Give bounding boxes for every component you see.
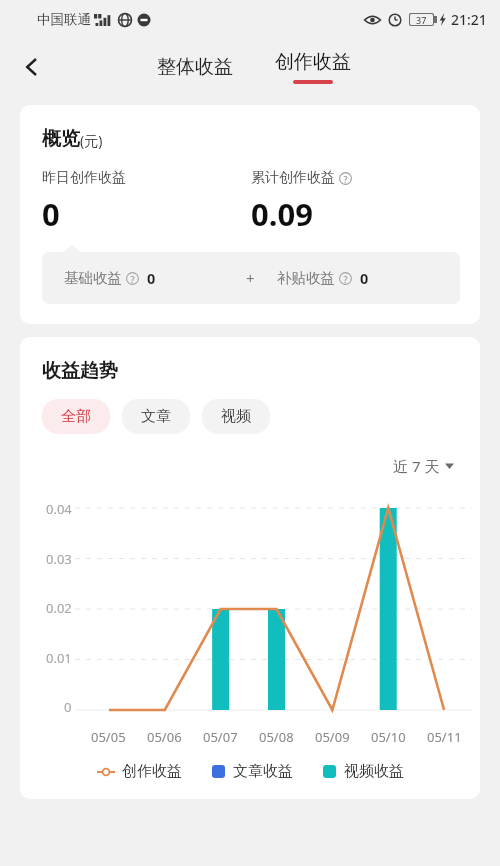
staticText: 创作收益 bbox=[275, 50, 351, 74]
button[interactable]: 近 7 天 bbox=[389, 452, 458, 480]
staticText: 近 7 天 bbox=[393, 456, 440, 476]
staticText: 05/07 bbox=[203, 728, 238, 746]
staticText: 收益趋势 bbox=[42, 359, 118, 383]
staticText: 05/05 bbox=[91, 728, 126, 746]
staticText: 0 bbox=[360, 268, 369, 288]
button[interactable]: 累计创作收益说明 bbox=[339, 172, 352, 185]
staticText: 0.03 bbox=[46, 550, 72, 568]
staticText: 中国联通 bbox=[37, 11, 91, 28]
staticText: 0.04 bbox=[46, 500, 72, 518]
staticText: (元) bbox=[80, 131, 103, 150]
staticText: 整体收益 bbox=[157, 55, 233, 79]
staticText: 视频 bbox=[221, 407, 251, 426]
button[interactable]: Back bbox=[10, 45, 54, 89]
button[interactable]: 创作收益 bbox=[97, 762, 182, 781]
staticText: 文章 bbox=[141, 407, 171, 426]
staticText: 创作收益 bbox=[122, 762, 182, 781]
button[interactable]: 基础收益 bbox=[42, 252, 460, 304]
staticText: 文章收益 bbox=[233, 762, 293, 781]
button[interactable]: 文章收益 bbox=[212, 762, 293, 781]
staticText: ? bbox=[130, 273, 135, 285]
staticText: 基础收益 bbox=[64, 269, 122, 287]
staticText: 0.02 bbox=[46, 599, 72, 617]
staticText: 0 bbox=[42, 193, 60, 235]
staticText: 昨日创作收益 bbox=[42, 169, 126, 187]
button[interactable]: 文章 bbox=[122, 399, 190, 434]
staticText: ? bbox=[343, 173, 348, 185]
staticText: ? bbox=[343, 273, 348, 285]
staticText: 21:21 bbox=[451, 10, 487, 29]
staticText: 05/10 bbox=[371, 728, 406, 746]
button[interactable]: 视频 bbox=[202, 399, 270, 434]
staticText: 05/08 bbox=[259, 728, 294, 746]
staticText: 05/11 bbox=[427, 728, 462, 746]
staticText: 37 bbox=[416, 14, 427, 25]
staticText: 0 bbox=[64, 698, 72, 716]
staticText: + bbox=[246, 268, 255, 288]
staticText: 05/06 bbox=[147, 728, 182, 746]
button[interactable]: 视频收益 bbox=[323, 762, 404, 781]
staticText: 0.01 bbox=[46, 649, 72, 667]
staticText: 全部 bbox=[61, 407, 91, 426]
button[interactable]: 创作收益 bbox=[265, 48, 361, 86]
staticText: 累计创作收益 bbox=[251, 169, 335, 187]
staticText: 0.09 bbox=[251, 193, 313, 235]
staticText: 0 bbox=[147, 268, 156, 288]
staticText: 05/09 bbox=[315, 728, 350, 746]
staticText: 视频收益 bbox=[344, 762, 404, 781]
staticText: 补贴收益 bbox=[277, 269, 335, 287]
button[interactable]: 全部 bbox=[42, 399, 110, 434]
staticText: 概览 bbox=[42, 127, 80, 151]
button[interactable]: 整体收益 bbox=[147, 49, 243, 85]
